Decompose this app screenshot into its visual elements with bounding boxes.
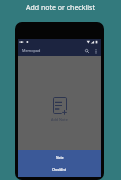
button[interactable]: More options [93, 48, 99, 54]
staticText: Memopad [22, 48, 41, 53]
staticText: Add note or checklist [26, 3, 95, 13]
button[interactable]: Note [18, 150, 101, 164]
staticText: Checklist [52, 168, 67, 172]
staticText: Add Note [51, 117, 68, 122]
staticText: Note [56, 156, 64, 160]
button[interactable]: Add Note [53, 97, 67, 114]
button[interactable]: Checklist [18, 164, 101, 177]
button[interactable]: Search [83, 47, 91, 55]
